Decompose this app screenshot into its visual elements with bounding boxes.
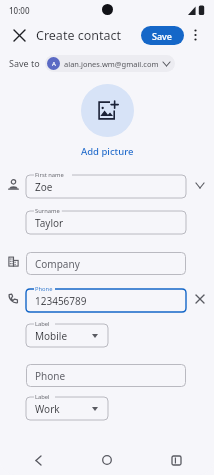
staticText: Surname <box>35 207 60 215</box>
staticText: Create contact <box>36 27 122 44</box>
staticText: Phone <box>35 285 53 293</box>
button[interactable]: First name <box>26 171 186 198</box>
staticText: Label <box>35 320 50 328</box>
staticText: Zoe <box>35 180 53 194</box>
button[interactable]: Clear phone number <box>186 287 214 311</box>
staticText: alan.jones.wm@gmail.com <box>64 59 159 69</box>
staticText: Phone <box>35 369 66 383</box>
staticText: Mobile <box>35 329 68 343</box>
staticText: Save <box>152 30 173 42</box>
button[interactable]: Close <box>8 24 30 46</box>
button[interactable]: Surname <box>26 207 186 234</box>
staticText: Save to <box>9 57 40 69</box>
button[interactable]: Phone <box>26 285 186 312</box>
button[interactable]: Label <box>26 320 108 347</box>
button[interactable]: Add picture <box>81 84 134 137</box>
button[interactable]: Recent apps <box>164 448 188 472</box>
button[interactable]: Expand name fields <box>186 173 214 197</box>
button[interactable]: More options <box>184 24 206 46</box>
staticText: Company <box>35 257 80 271</box>
button[interactable]: Back <box>26 448 50 472</box>
button[interactable]: Company <box>26 248 186 275</box>
button[interactable]: A <box>45 55 175 72</box>
staticText: A <box>52 60 56 68</box>
button[interactable]: Home <box>95 448 119 472</box>
staticText: Taylor <box>35 216 64 230</box>
staticText: 10:00 <box>9 5 30 16</box>
button[interactable]: Label <box>26 393 108 420</box>
staticText: Add picture <box>81 145 134 158</box>
staticText: 123456789 <box>35 294 87 308</box>
button[interactable]: Save <box>141 26 184 45</box>
button[interactable]: Add picture <box>77 144 138 159</box>
staticText: First name <box>35 171 64 179</box>
button[interactable]: Phone <box>26 360 186 387</box>
staticText: Label <box>35 393 50 401</box>
staticText: Work <box>35 402 60 416</box>
